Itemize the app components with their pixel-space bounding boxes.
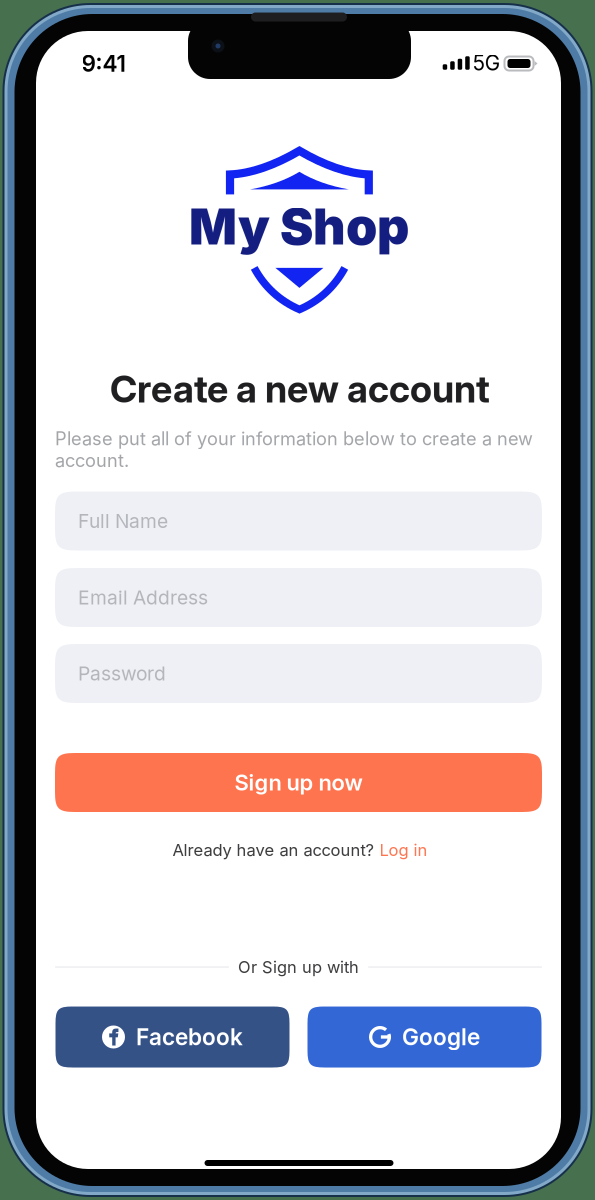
staticText: Email Address (78, 586, 208, 609)
staticText: Password (78, 662, 166, 685)
staticText: 5G (473, 50, 500, 75)
staticText: Sign up now (234, 769, 362, 796)
staticText: Please put all of your information below… (55, 428, 533, 471)
staticText: Already have an account? (172, 840, 373, 860)
button[interactable]: Password (55, 644, 542, 703)
staticText: Google (402, 1023, 480, 1051)
button[interactable]: Email Address (55, 568, 542, 627)
staticText: My Shop (189, 196, 409, 257)
staticText: Full Name (78, 509, 168, 533)
staticText: Or Sign up with (238, 957, 359, 977)
button[interactable]: Facebook (55, 1006, 289, 1067)
staticText: Log in (379, 840, 427, 860)
button[interactable]: Log in (379, 840, 427, 860)
button[interactable]: Sign up now (55, 753, 542, 812)
staticText: 9:41 (81, 50, 125, 77)
button[interactable]: Google (307, 1006, 541, 1067)
staticText: Create a new account (110, 366, 490, 412)
button[interactable]: Full Name (55, 491, 542, 550)
staticText: Facebook (136, 1023, 243, 1051)
